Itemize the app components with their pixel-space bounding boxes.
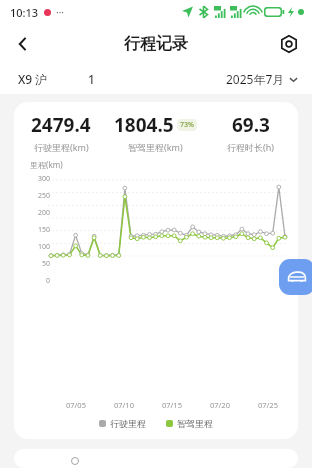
staticText: 智驾里程(km) bbox=[128, 141, 183, 153]
staticText: 07/10 bbox=[114, 400, 134, 410]
staticText: 250 bbox=[37, 191, 50, 201]
staticText: 1 bbox=[88, 71, 95, 87]
button[interactable]: 2025年7月 bbox=[226, 71, 298, 87]
button[interactable]: Back bbox=[6, 27, 40, 61]
button[interactable]: 2479.4 bbox=[14, 102, 298, 439]
staticText: 行程记录 bbox=[124, 34, 188, 54]
staticText: 2479.4 bbox=[31, 112, 91, 138]
staticText: 1804.5 bbox=[114, 112, 174, 138]
button[interactable]: 智驾里程 bbox=[166, 418, 213, 429]
staticText: 07/15 bbox=[162, 400, 182, 410]
button[interactable]: X9 沪 bbox=[18, 71, 95, 87]
staticText: 07/20 bbox=[210, 400, 230, 410]
staticText: 行驶里程 bbox=[110, 418, 146, 429]
staticText: 150 bbox=[37, 225, 50, 235]
button[interactable]: 智驾数据 bbox=[14, 449, 298, 468]
staticText: X9 沪 bbox=[18, 71, 48, 87]
staticText: 200 bbox=[37, 208, 50, 218]
staticText: 100 bbox=[37, 242, 50, 252]
staticText: 智驾里程 bbox=[177, 418, 213, 429]
staticText: 0 bbox=[45, 276, 50, 286]
button[interactable]: Settings bbox=[273, 28, 305, 60]
staticText: 07/25 bbox=[258, 400, 278, 410]
button[interactable]: 行驶里程 bbox=[99, 418, 146, 429]
button[interactable]: My vehicle bbox=[279, 259, 312, 295]
staticText: 里程(km) bbox=[30, 159, 63, 170]
staticText: 10:13 bbox=[10, 5, 39, 20]
staticText: 300 bbox=[37, 174, 50, 184]
staticText: 行驶里程(km) bbox=[34, 141, 89, 153]
staticText: 69.3 bbox=[232, 112, 270, 138]
staticText: 73% bbox=[180, 120, 194, 130]
staticText: ··· bbox=[56, 5, 65, 19]
staticText: 2025年7月 bbox=[226, 71, 285, 87]
staticText: 行程时长(h) bbox=[227, 141, 274, 153]
staticText: 50 bbox=[41, 259, 50, 269]
staticText: 07/05 bbox=[66, 400, 86, 410]
